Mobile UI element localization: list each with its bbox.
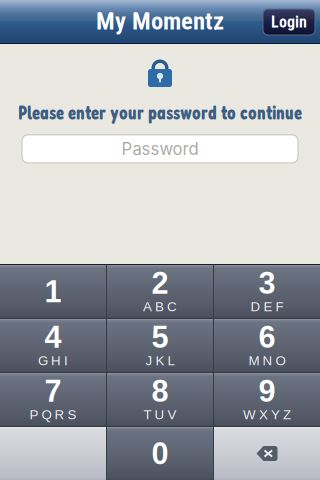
staticText: 4 xyxy=(44,320,61,354)
staticText: 3 xyxy=(258,266,275,300)
staticText: 0 xyxy=(151,436,168,471)
button[interactable]: 9 xyxy=(214,373,320,426)
staticText: G H I xyxy=(38,353,68,368)
staticText: 1 xyxy=(44,274,61,309)
staticText: My Momentz xyxy=(96,6,224,35)
staticText: 9 xyxy=(258,374,275,408)
staticText: J K L xyxy=(145,353,174,368)
button[interactable]: Blank xyxy=(0,427,106,480)
staticText: T U V xyxy=(143,407,176,422)
staticText: 6 xyxy=(258,320,275,354)
button[interactable]: 4 xyxy=(0,319,106,372)
button[interactable]: 3 xyxy=(214,265,320,318)
staticText: D E F xyxy=(250,299,283,314)
button[interactable]: 6 xyxy=(214,319,320,372)
staticText: 5 xyxy=(151,320,168,354)
staticText: W X Y Z xyxy=(243,407,291,422)
button[interactable]: 1 xyxy=(0,265,106,318)
staticText: M N O xyxy=(248,353,285,368)
staticText: Please enter your password to continue xyxy=(18,101,302,124)
staticText: 7 xyxy=(44,374,61,408)
staticText: Password xyxy=(121,139,198,159)
button[interactable]: 2 xyxy=(107,265,213,318)
staticText: A B C xyxy=(143,299,177,314)
button[interactable]: Password xyxy=(22,135,298,163)
button[interactable]: Login xyxy=(263,9,315,35)
button[interactable]: Delete xyxy=(214,427,320,480)
button[interactable]: 7 xyxy=(0,373,106,426)
button[interactable]: 8 xyxy=(107,373,213,426)
staticText: 8 xyxy=(151,374,168,408)
staticText: P Q R S xyxy=(29,407,76,422)
button[interactable]: 0 xyxy=(107,427,213,480)
button[interactable]: 5 xyxy=(107,319,213,372)
staticText: 2 xyxy=(151,266,168,300)
staticText: Login xyxy=(271,13,307,31)
